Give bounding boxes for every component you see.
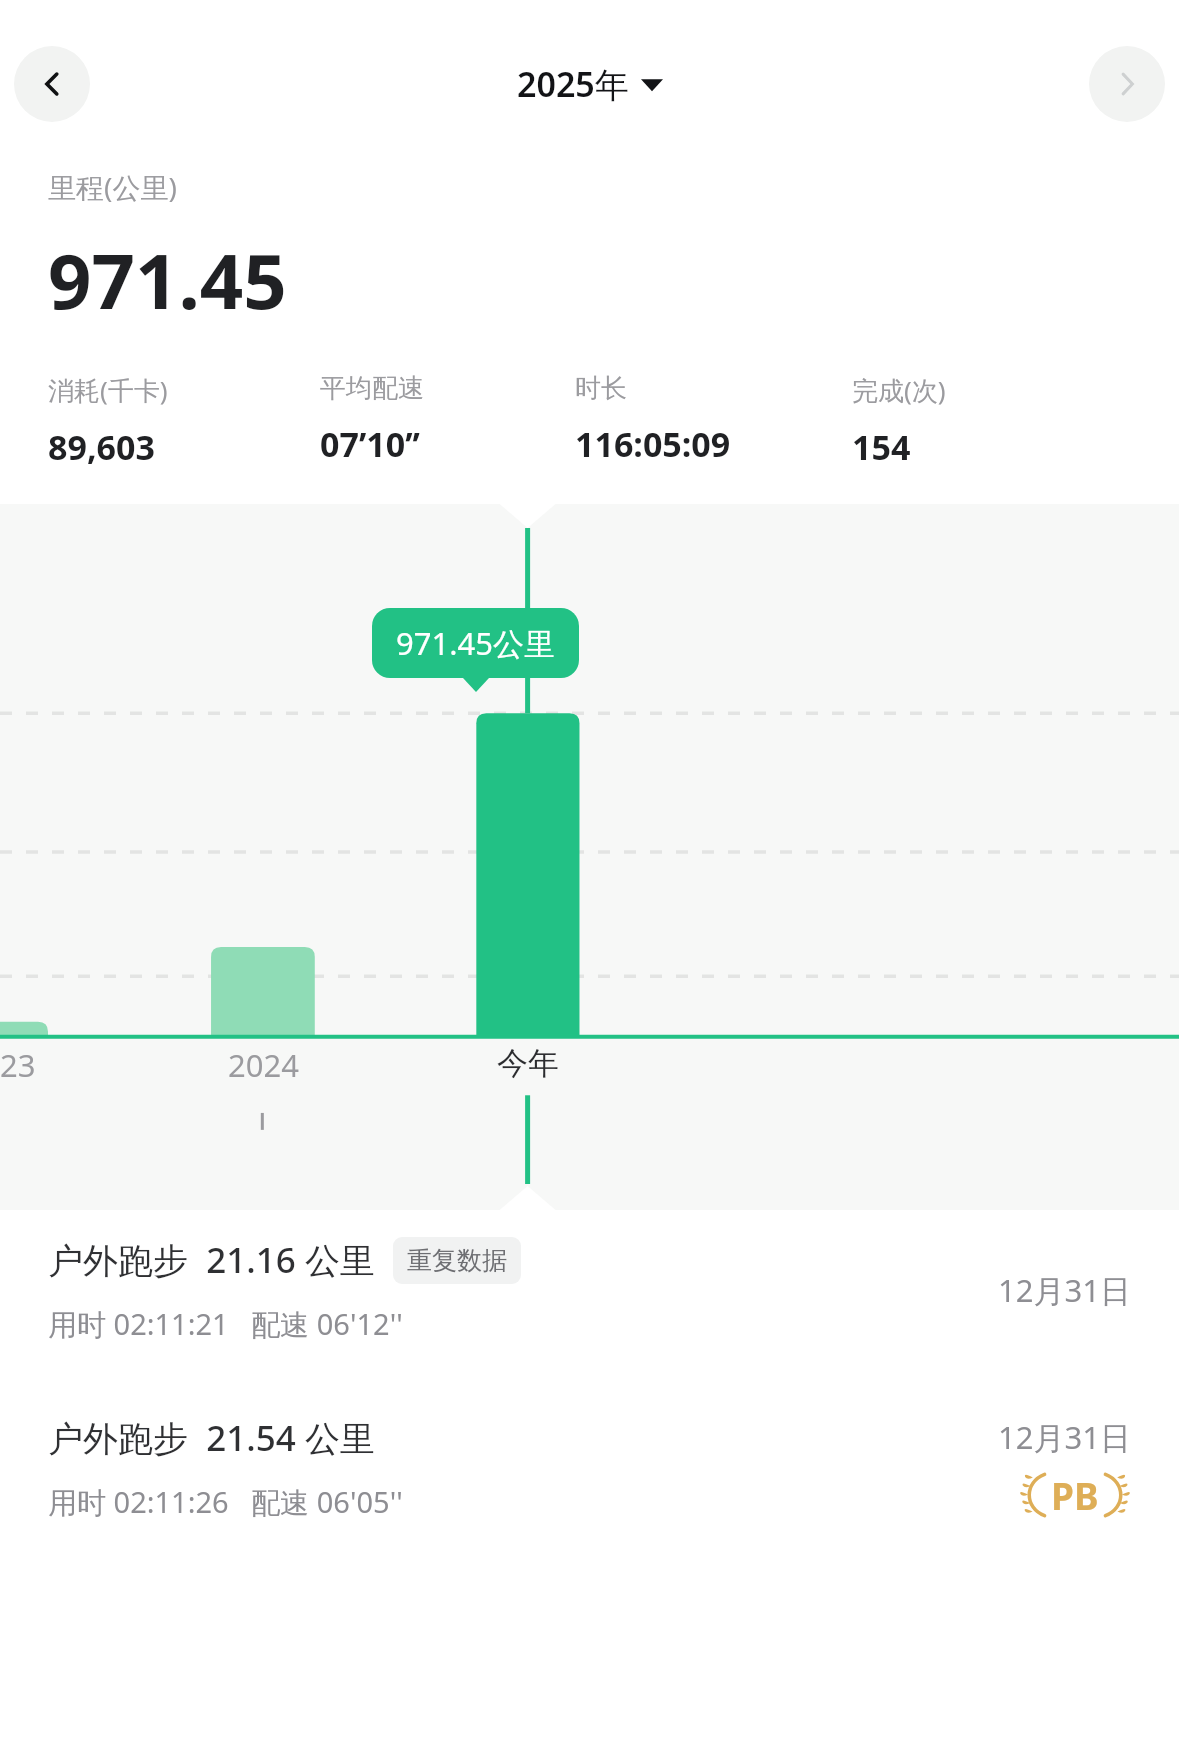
button[interactable]: Back — [14, 46, 90, 122]
staticText: 今年 — [497, 1044, 559, 1083]
staticText: 12月31日 — [998, 1269, 1131, 1311]
staticText: 用时 02:11:26 配速 06'05'' — [48, 1482, 403, 1522]
staticText: 89,603 — [48, 424, 155, 470]
staticText: 2025年 — [517, 61, 629, 107]
staticText: 时长 — [575, 372, 627, 405]
staticText: 23 — [0, 1044, 36, 1086]
staticText: 户外跑步 21.16 公里 — [48, 1236, 375, 1284]
button[interactable]: 户外跑步 21.54 公里 — [0, 1404, 1179, 1532]
staticText: 完成(次) — [852, 372, 946, 408]
staticText: 重复数据 — [407, 1245, 507, 1276]
button[interactable]: 2025年 — [511, 57, 669, 111]
staticText: 用时 02:11:21 配速 06'12'' — [48, 1304, 403, 1344]
staticText: 里程(公里) — [48, 168, 177, 206]
staticText: 116:05:09 — [575, 421, 731, 467]
staticText: 154 — [852, 424, 911, 470]
staticText: 消耗(千卡) — [48, 372, 168, 408]
button[interactable]: Next — [1089, 46, 1165, 122]
staticText: 12月31日 — [998, 1416, 1131, 1458]
staticText: 971.45公里 — [396, 622, 555, 664]
staticText: 971.45 — [48, 228, 287, 332]
staticText: 07’10’’ — [320, 421, 420, 467]
staticText: 2024 — [228, 1044, 299, 1086]
staticText: 户外跑步 21.54 公里 — [48, 1414, 375, 1462]
staticText: 平均配速 — [320, 372, 424, 405]
button[interactable]: 户外跑步 21.16 公里 — [0, 1226, 1179, 1354]
staticText: PB — [1051, 1470, 1099, 1520]
